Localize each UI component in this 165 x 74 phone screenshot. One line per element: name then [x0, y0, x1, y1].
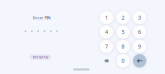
button[interactable]: 2: [116, 11, 130, 24]
staticText: Emergency: [33, 55, 48, 59]
button[interactable]: 9: [133, 40, 146, 53]
button[interactable]: 5: [116, 25, 130, 39]
button[interactable]: 0: [116, 54, 130, 67]
staticText: 1: [105, 14, 108, 21]
staticText: 9: [138, 43, 141, 50]
button[interactable]: 3: [133, 11, 146, 24]
button[interactable]: 4: [100, 25, 113, 39]
staticText: 4: [105, 28, 108, 36]
staticText: 6: [138, 28, 141, 36]
button[interactable]: Submit: [133, 54, 146, 67]
staticText: 7: [105, 43, 108, 50]
button[interactable]: 6: [133, 25, 146, 39]
button[interactable]: 8: [116, 40, 130, 53]
staticText: 2: [121, 14, 124, 21]
button[interactable]: Emergency: [30, 55, 51, 60]
staticText: 0: [121, 57, 124, 64]
button[interactable]: Delete: [100, 54, 113, 67]
button[interactable]: 7: [100, 40, 113, 53]
staticText: 8: [121, 43, 124, 50]
staticText: 5: [121, 28, 124, 36]
button[interactable]: 1: [100, 11, 113, 24]
staticText: 3: [138, 14, 141, 21]
staticText: Enter PIN: [32, 15, 50, 20]
